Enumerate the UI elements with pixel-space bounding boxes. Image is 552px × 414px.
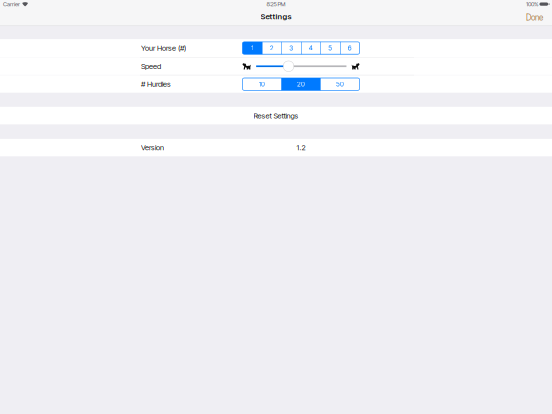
staticText: 2 <box>270 44 274 52</box>
staticText: Settings <box>260 12 291 21</box>
staticText: 50 <box>336 80 344 88</box>
button[interactable]: 4 <box>301 42 320 54</box>
staticText: 1 <box>251 44 253 52</box>
staticText: # Hurdles <box>141 80 171 89</box>
button[interactable]: 1 <box>242 42 262 54</box>
button[interactable]: 5 <box>320 42 340 54</box>
staticText: 20 <box>297 80 305 88</box>
staticText: 5 <box>328 44 332 52</box>
staticText: 100% <box>526 1 538 8</box>
staticText: Done <box>526 13 543 22</box>
staticText: 10 <box>259 80 265 88</box>
staticText: 4 <box>309 44 313 52</box>
staticText: 3 <box>289 44 293 52</box>
button[interactable]: 50 <box>320 78 359 90</box>
staticText: 8:25 PM <box>266 1 285 8</box>
button[interactable]: 2 <box>262 42 281 54</box>
button[interactable]: 6 <box>340 42 359 54</box>
button[interactable]: Reset Settings <box>0 107 552 125</box>
button[interactable]: Done <box>521 11 548 25</box>
button[interactable]: 3 <box>281 42 301 54</box>
staticText: Carrier <box>3 1 20 8</box>
staticText: Version <box>141 143 164 152</box>
button[interactable]: 20 <box>281 78 320 90</box>
button[interactable]: 10 <box>242 78 281 90</box>
staticText: Your Horse (#) <box>141 43 186 52</box>
staticText: 1.2 <box>296 143 305 152</box>
staticText: Speed <box>141 62 161 71</box>
staticText: Reset Settings <box>253 111 298 120</box>
staticText: 6 <box>348 44 352 52</box>
